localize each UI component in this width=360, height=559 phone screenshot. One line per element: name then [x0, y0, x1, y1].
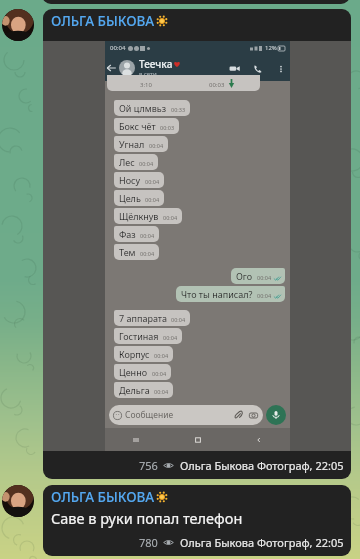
- staticText: 780: [139, 535, 158, 550]
- staticText: 00:04: [257, 292, 272, 299]
- staticText: Ценно: [119, 366, 148, 378]
- staticText: 00:04: [140, 250, 155, 257]
- staticText: 00:03: [209, 81, 225, 89]
- staticText: 00:33: [171, 106, 186, 113]
- staticText: Что ты написал?: [181, 288, 253, 300]
- staticText: Тем: [119, 246, 136, 258]
- staticText: Щёлкнув: [119, 210, 159, 222]
- staticText: 00:04: [149, 142, 164, 149]
- staticText: 7 аппарата: [119, 312, 167, 324]
- staticText: 00:04: [139, 160, 154, 167]
- staticText: 00:04: [154, 352, 169, 359]
- other: Video call: [229, 63, 240, 74]
- button[interactable]: Сообщение: [113, 405, 258, 425]
- staticText: Цель: [119, 192, 141, 204]
- other: Camera: [249, 411, 258, 420]
- staticText: ОЛЬГА БЫКОВА: [51, 12, 155, 30]
- staticText: Фаз: [119, 228, 136, 240]
- staticText: Ольга Быкова Фотограф, 22:05: [180, 535, 344, 550]
- staticText: ОЛЬГА БЫКОВА: [51, 488, 155, 506]
- staticText: 12%: [265, 44, 277, 52]
- other: Recents: [131, 435, 141, 445]
- other: Back: [254, 435, 264, 445]
- button[interactable]: Record voice message: [266, 405, 286, 425]
- button[interactable]: ОЛЬГА БЫКОВА: [43, 9, 351, 479]
- staticText: Дельга: [119, 384, 150, 396]
- staticText: 00:04: [163, 214, 178, 221]
- staticText: 00:04: [154, 388, 169, 395]
- staticText: 00:04: [145, 196, 160, 203]
- staticText: Сообщение: [125, 409, 174, 421]
- staticText: 00:03: [160, 124, 175, 131]
- other: Voice call: [253, 64, 263, 74]
- staticText: Ого: [236, 270, 253, 282]
- staticText: Ой цлмвьз: [119, 102, 167, 114]
- other: More options: [276, 64, 286, 74]
- staticText: Теечка: [139, 57, 173, 71]
- staticText: Носу: [119, 174, 141, 186]
- staticText: в сети: [139, 70, 157, 78]
- staticText: Лес: [119, 156, 135, 168]
- staticText: Бокс чёт: [119, 120, 156, 132]
- staticText: 00:04: [257, 274, 272, 281]
- staticText: 00:04: [110, 44, 126, 52]
- staticText: 3:10: [140, 81, 152, 89]
- staticText: Гостиная: [119, 330, 159, 342]
- staticText: 00:04: [171, 316, 186, 323]
- other: Home: [193, 435, 203, 445]
- staticText: 00:04: [145, 178, 160, 185]
- other: Back: [106, 63, 116, 73]
- button[interactable]: ОЛЬГА БЫКОВА: [43, 485, 351, 556]
- staticText: Ольга Быкова Фотограф, 22:05: [180, 458, 344, 473]
- staticText: Корпус: [119, 348, 150, 360]
- other: Attach: [234, 411, 243, 420]
- staticText: Угнал: [119, 138, 145, 150]
- staticText: 00:04: [152, 370, 167, 377]
- staticText: 756: [139, 458, 158, 473]
- staticText: 00:04: [140, 232, 155, 239]
- staticText: 00:04: [163, 334, 178, 341]
- staticText: Саве в руки попал телефон: [51, 508, 243, 528]
